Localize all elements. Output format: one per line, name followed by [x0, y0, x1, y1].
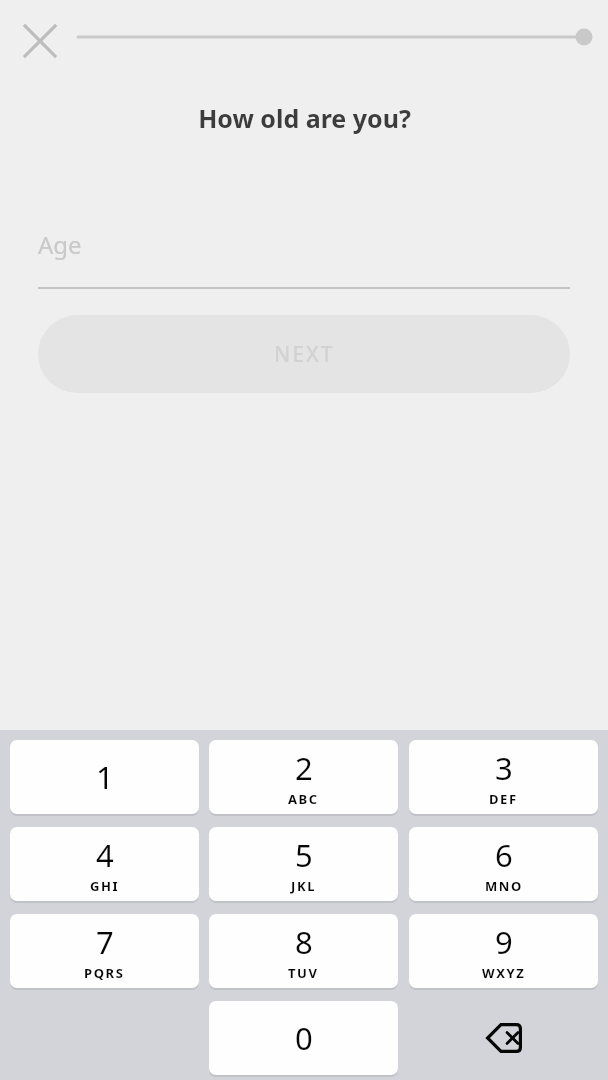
staticText: JKL — [291, 877, 317, 895]
button[interactable]: 8 — [209, 914, 398, 988]
button[interactable]: Age — [38, 228, 570, 289]
staticText: 5 — [295, 834, 313, 876]
button[interactable]: 1 — [10, 740, 199, 814]
staticText: Age — [38, 228, 82, 261]
button[interactable]: 0 — [209, 1001, 398, 1075]
staticText: ABC — [288, 790, 319, 808]
staticText: MNO — [485, 877, 523, 895]
button[interactable]: 3 — [409, 740, 598, 814]
staticText: DEF — [489, 790, 518, 808]
staticText: 8 — [295, 921, 313, 963]
button[interactable]: 4 — [10, 827, 199, 901]
button[interactable]: 2 — [209, 740, 398, 814]
button[interactable]: 7 — [10, 914, 199, 988]
staticText: PQRS — [84, 964, 125, 982]
staticText: GHI — [90, 877, 120, 895]
staticText: 1 — [96, 756, 114, 798]
button[interactable]: 6 — [409, 827, 598, 901]
staticText: How old are you? — [198, 101, 411, 135]
staticText: 0 — [295, 1017, 313, 1059]
button[interactable]: Backspace — [409, 1001, 598, 1075]
staticText: 6 — [495, 834, 513, 876]
button[interactable]: Close — [12, 13, 68, 69]
staticText: 4 — [96, 834, 114, 876]
staticText: TUV — [288, 964, 319, 982]
staticText: 2 — [295, 747, 313, 789]
staticText: 9 — [495, 921, 513, 963]
staticText: 3 — [495, 747, 513, 789]
button[interactable]: 9 — [409, 914, 598, 988]
staticText: NEXT — [274, 340, 335, 369]
staticText: 7 — [96, 921, 114, 963]
button[interactable]: 5 — [209, 827, 398, 901]
staticText: WXYZ — [482, 964, 526, 982]
